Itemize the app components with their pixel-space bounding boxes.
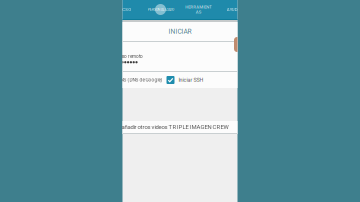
staticText: HERRAMIENT AS [185,4,212,14]
staticText: Acceso remoto [113,54,143,59]
button[interactable]: Iniciar SSH [166,76,174,84]
staticText: DNS (DNS de Google) [117,77,162,83]
button[interactable]: AYUDA [218,0,249,19]
staticText: INICIAR [168,28,191,35]
staticText: Iniciar SSH [178,77,203,83]
button[interactable]: HERRAMIENT AS [179,0,218,19]
staticText: PERSONALIZADO [147,7,173,12]
staticText: CSO [122,7,131,12]
staticText: AYUDA [226,7,240,12]
staticText: y añadir otros videos TRIPLE IMAGEN CREW [117,124,228,130]
button[interactable]: PERSONALIZADO [142,0,179,19]
button[interactable]: CSO [111,0,142,19]
